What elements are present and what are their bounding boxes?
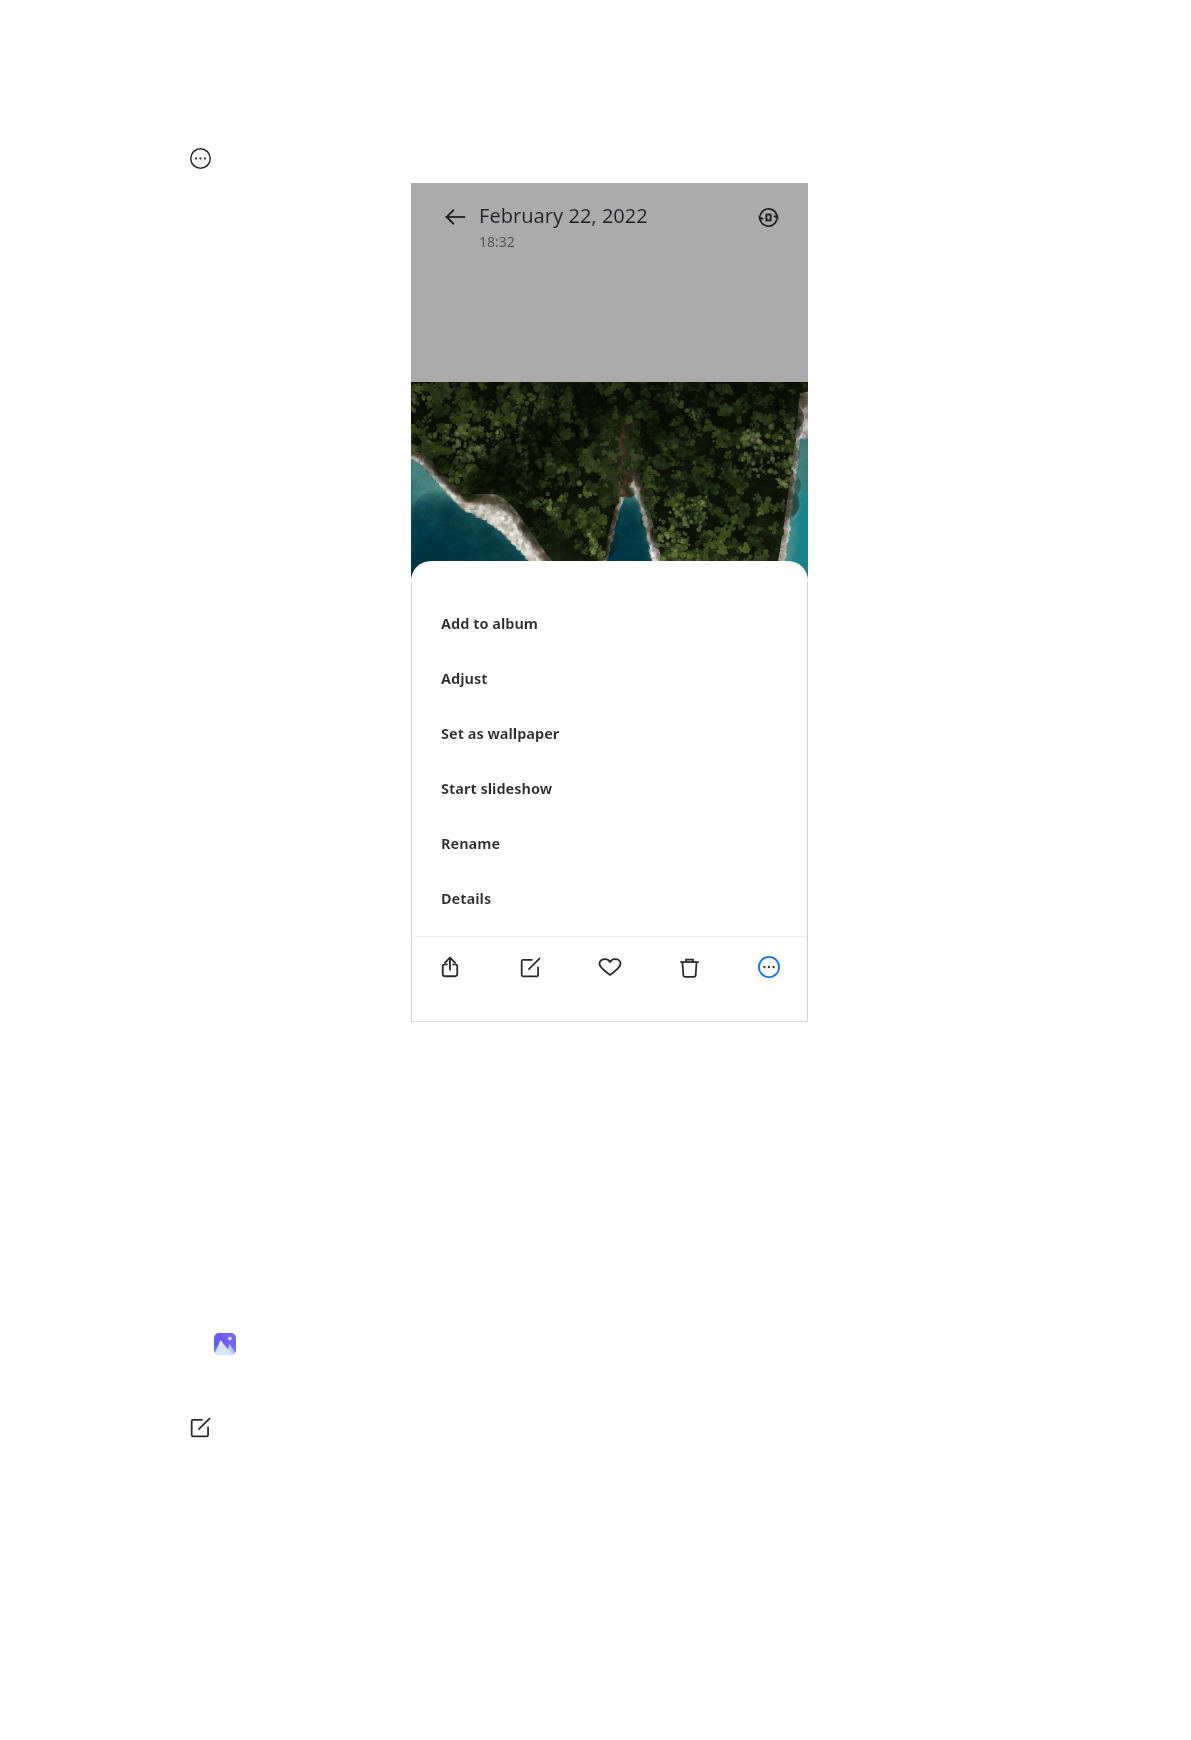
button[interactable]: Share bbox=[430, 947, 470, 987]
staticText: Details bbox=[441, 888, 492, 908]
staticText: 18:32 bbox=[479, 232, 515, 251]
button[interactable]: More options bbox=[749, 947, 789, 987]
button[interactable]: More options bbox=[190, 148, 211, 169]
button[interactable]: Gallery app bbox=[214, 1333, 236, 1355]
staticText: Add to album bbox=[441, 613, 538, 633]
staticText: Set as wallpaper bbox=[441, 723, 560, 743]
button[interactable]: Delete bbox=[669, 947, 709, 987]
button[interactable]: Start slideshow bbox=[411, 760, 808, 815]
button[interactable]: Auto rotate bbox=[752, 201, 784, 233]
button[interactable]: Add to album bbox=[411, 595, 808, 650]
staticText: Adjust bbox=[441, 668, 488, 688]
button[interactable]: Rename bbox=[411, 815, 808, 870]
staticText: Rename bbox=[441, 833, 501, 853]
button[interactable]: Back bbox=[439, 201, 471, 233]
button[interactable]: Edit bbox=[190, 1417, 211, 1438]
button[interactable]: Set as wallpaper bbox=[411, 705, 808, 760]
button[interactable]: Adjust bbox=[411, 650, 808, 705]
button[interactable]: Details bbox=[411, 870, 808, 925]
staticText: Start slideshow bbox=[441, 778, 553, 798]
button[interactable]: Edit bbox=[510, 947, 550, 987]
staticText: February 22, 2022 bbox=[479, 202, 648, 229]
button[interactable]: Favorite bbox=[590, 947, 630, 987]
